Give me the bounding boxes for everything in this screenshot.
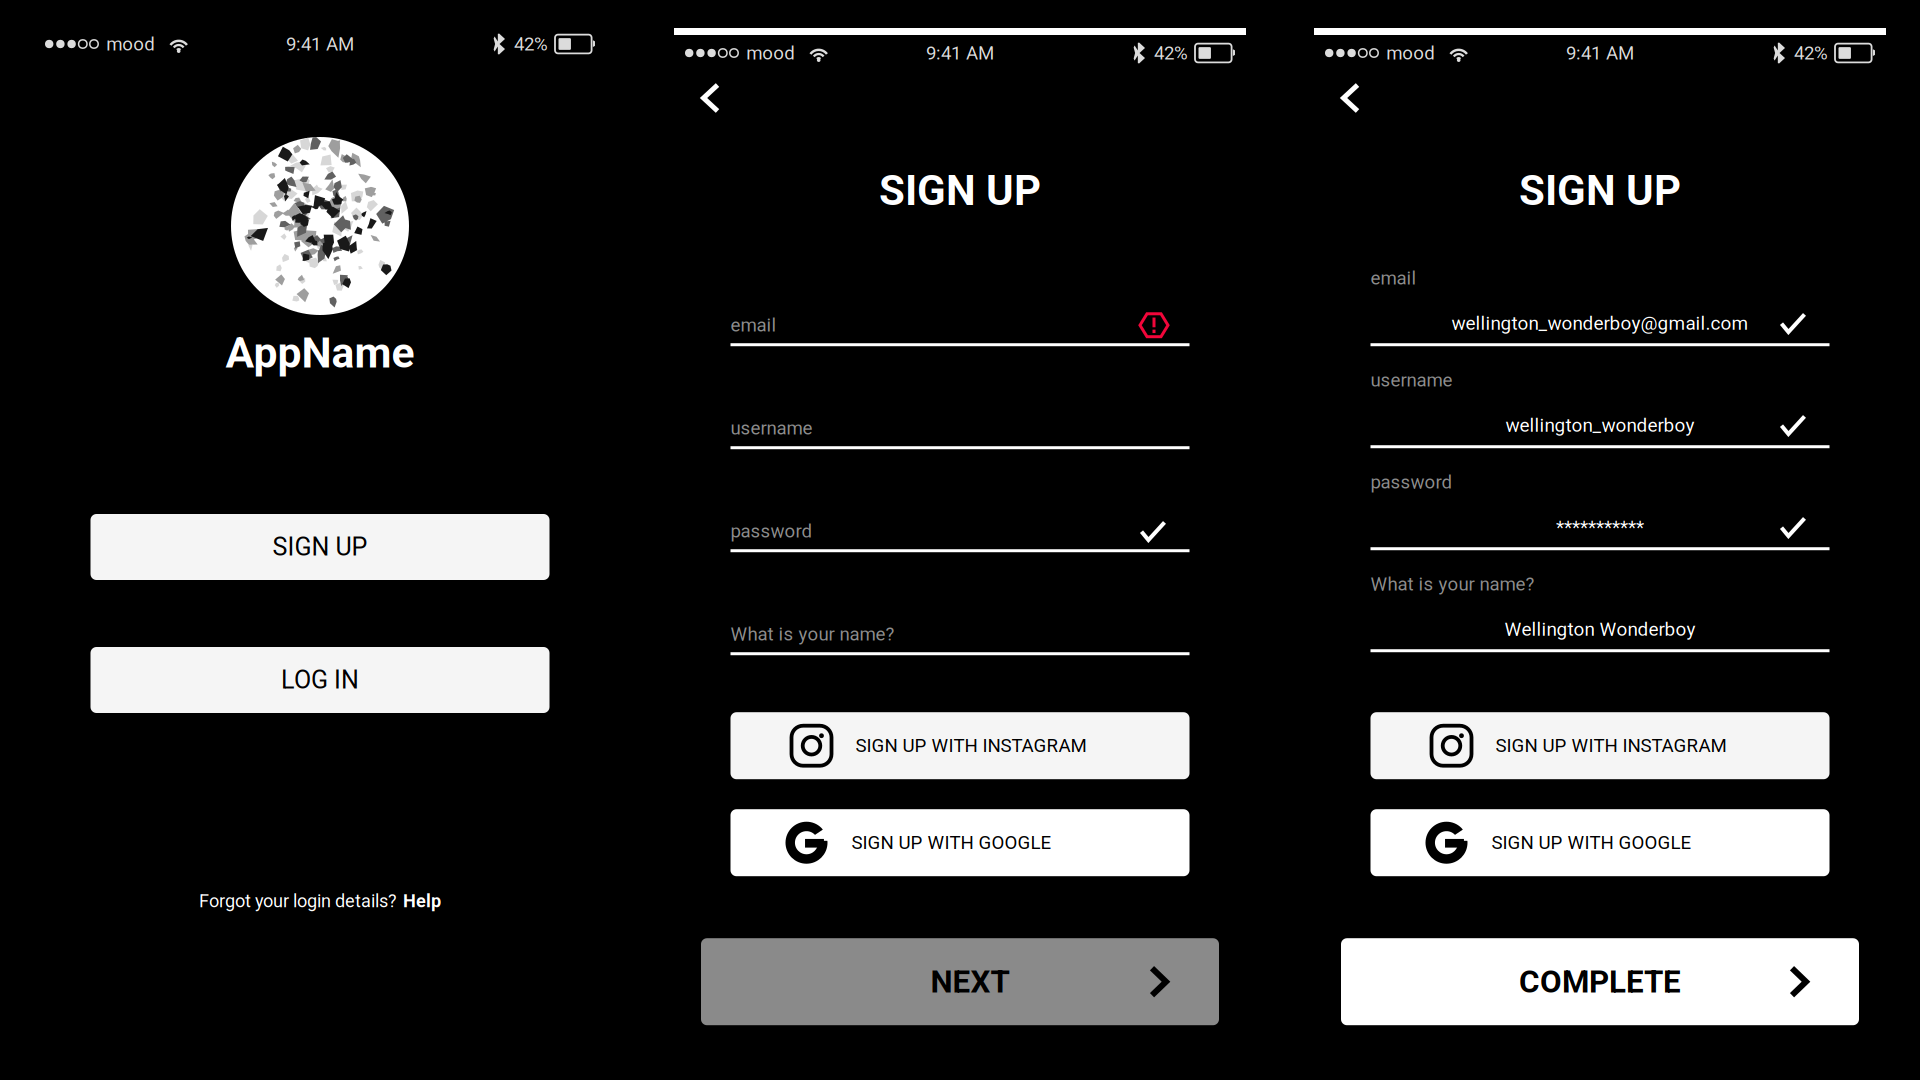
staticText: wellington_wonderboy@gmail.com xyxy=(1451,312,1748,334)
staticText: What is your name? xyxy=(730,623,894,645)
staticText: 9:41 AM xyxy=(1566,42,1634,64)
staticText: username xyxy=(730,417,812,439)
button[interactable]: SIGN UP xyxy=(90,514,549,580)
button[interactable]: COMPLETE xyxy=(1341,938,1859,1025)
staticText: password xyxy=(1370,471,1452,493)
button[interactable]: Back xyxy=(640,71,775,125)
staticText: SIGN UP WITH INSTAGRAM xyxy=(1495,735,1726,757)
staticText: email xyxy=(730,314,776,336)
button[interactable]: SIGN UP WITH INSTAGRAM xyxy=(1370,712,1829,779)
staticText: SIGN UP xyxy=(272,532,367,562)
button[interactable]: Forgot your login details? xyxy=(199,887,441,915)
staticText: 42% xyxy=(514,33,548,55)
staticText: *********** xyxy=(1556,516,1644,538)
staticText: password xyxy=(730,520,812,542)
staticText: Help xyxy=(403,890,441,912)
button[interactable]: NEXT xyxy=(701,938,1219,1025)
staticText: SIGN UP WITH INSTAGRAM xyxy=(855,735,1086,757)
staticText: AppName xyxy=(225,328,414,378)
staticText: What is your name? xyxy=(1370,573,1534,595)
button[interactable]: SIGN UP WITH GOOGLE xyxy=(730,809,1189,876)
staticText: 9:41 AM xyxy=(286,33,354,55)
staticText: 42% xyxy=(1794,42,1828,64)
staticText: mood xyxy=(746,42,795,64)
staticText: SIGN UP xyxy=(1519,166,1681,215)
staticText: mood xyxy=(1386,42,1435,64)
staticText: 9:41 AM xyxy=(926,42,994,64)
staticText: username xyxy=(1370,369,1452,391)
staticText: SIGN UP WITH GOOGLE xyxy=(1491,832,1691,854)
button[interactable]: SIGN UP WITH GOOGLE xyxy=(1370,809,1829,876)
staticText: SIGN UP xyxy=(879,166,1041,215)
staticText: COMPLETE xyxy=(1519,963,1681,1000)
staticText: Forgot your login details? xyxy=(199,890,397,912)
staticText: 42% xyxy=(1154,42,1188,64)
staticText: Wellington Wonderboy xyxy=(1504,618,1695,640)
staticText: LOG IN xyxy=(281,665,359,695)
button[interactable]: SIGN UP WITH INSTAGRAM xyxy=(730,712,1189,779)
button[interactable]: LOG IN xyxy=(90,647,549,713)
staticText: email xyxy=(1370,267,1416,289)
staticText: mood xyxy=(106,33,155,55)
staticText: wellington_wonderboy xyxy=(1505,414,1694,436)
button[interactable]: Back xyxy=(1280,71,1415,125)
staticText: NEXT xyxy=(930,963,1009,1000)
staticText: SIGN UP WITH GOOGLE xyxy=(851,832,1051,854)
